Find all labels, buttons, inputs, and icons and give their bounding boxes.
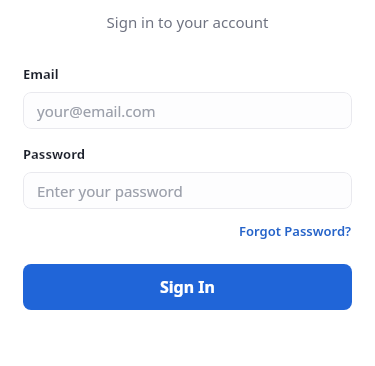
staticText: Sign in to your account [0, 12, 375, 32]
staticText: Forgot Password? [239, 222, 352, 240]
button[interactable]: Forgot Password? [239, 219, 352, 243]
button[interactable]: Sign In [23, 264, 352, 310]
staticText: Enter your password [37, 181, 183, 201]
staticText: Email [23, 65, 59, 83]
staticText: Password [23, 145, 85, 163]
button[interactable]: your@email.com [23, 92, 352, 129]
staticText: Sign In [160, 276, 215, 298]
staticText: your@email.com [37, 101, 156, 121]
button[interactable]: Enter your password [23, 172, 352, 209]
